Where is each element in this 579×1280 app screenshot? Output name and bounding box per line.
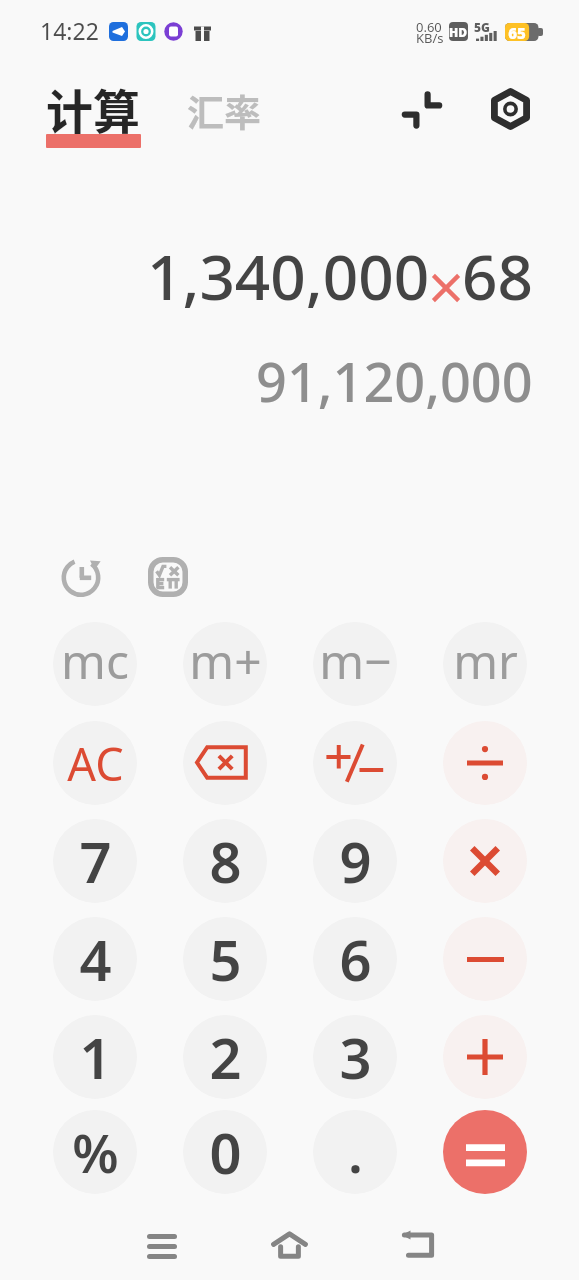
button[interactable]: Equals	[443, 1110, 527, 1194]
staticText: HD	[449, 24, 468, 40]
button[interactable]: 4	[53, 917, 137, 1001]
button[interactable]: 9	[313, 819, 397, 903]
staticText: 2	[209, 1019, 242, 1095]
button[interactable]: mr	[443, 622, 527, 706]
button[interactable]: AC	[53, 721, 137, 805]
button[interactable]: Backspace	[183, 721, 267, 805]
button[interactable]: m+	[183, 622, 267, 706]
staticText: 91,120,000	[256, 344, 533, 418]
button[interactable]: 计算	[38, 76, 150, 152]
button[interactable]: History	[55, 551, 107, 603]
staticText: KB/s	[416, 29, 444, 47]
button[interactable]: Back	[387, 1213, 449, 1275]
button[interactable]: 8	[183, 819, 267, 903]
button[interactable]: %	[53, 1110, 137, 1194]
staticText: 0.60	[416, 18, 442, 36]
staticText: 3	[339, 1019, 372, 1095]
button[interactable]: m−	[313, 622, 397, 706]
button[interactable]: Divide	[443, 721, 527, 805]
staticText: 7	[79, 823, 112, 899]
button[interactable]: Plus	[443, 1015, 527, 1099]
staticText: 9	[339, 823, 372, 899]
button[interactable]	[313, 721, 397, 805]
button[interactable]: Minus	[443, 917, 527, 1001]
staticText: 计算	[46, 74, 140, 142]
staticText: 8	[209, 823, 242, 899]
staticText: AC	[67, 733, 124, 794]
button[interactable]: 7	[53, 819, 137, 903]
staticText: 汇率	[187, 84, 261, 138]
staticText: 68	[462, 234, 533, 318]
staticText: m−	[319, 628, 392, 693]
button[interactable]: 2	[183, 1015, 267, 1099]
button[interactable]: .	[313, 1110, 397, 1194]
staticText: %	[72, 1116, 119, 1188]
button[interactable]: Settings	[482, 81, 538, 137]
button[interactable]: Multiply	[443, 819, 527, 903]
button[interactable]: 5	[183, 917, 267, 1001]
button[interactable]: 6	[313, 917, 397, 1001]
button[interactable]: mc	[53, 622, 137, 706]
staticText: mr	[453, 628, 518, 693]
staticText: 4	[79, 921, 112, 997]
staticText: 0	[209, 1114, 242, 1190]
staticText: 1	[79, 1019, 112, 1095]
button[interactable]: 0	[183, 1110, 267, 1194]
staticText: 5	[209, 921, 242, 997]
staticText: m+	[189, 628, 262, 693]
button[interactable]: Scientific mode	[142, 551, 194, 603]
button[interactable]: Recent apps	[130, 1213, 192, 1275]
button[interactable]: 3	[313, 1015, 397, 1099]
button[interactable]: Collapse keypad	[394, 82, 450, 138]
staticText: 5G	[474, 19, 490, 35]
staticText: 6	[339, 921, 372, 997]
button[interactable]: 1	[53, 1015, 137, 1099]
button[interactable]: 汇率	[178, 80, 270, 135]
staticText: .	[348, 1115, 363, 1189]
staticText: 1,340,000	[147, 234, 430, 318]
button[interactable]: Home	[258, 1213, 320, 1275]
staticText: 65	[508, 23, 526, 41]
staticText: mc	[61, 628, 129, 693]
staticText: 14:22	[40, 15, 99, 46]
